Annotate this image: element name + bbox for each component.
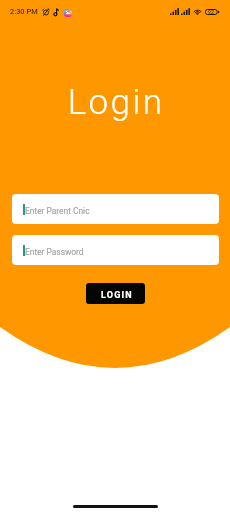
staticText: 2:30 PM [10, 7, 38, 16]
staticText: LOGIN [101, 290, 133, 301]
other: App notification [64, 9, 72, 17]
staticText: Enter Password [25, 247, 84, 257]
staticText: Login [1, 82, 230, 123]
staticText: 92 [208, 9, 214, 15]
button[interactable]: Enter Password [12, 235, 219, 265]
button[interactable]: Enter Parent Cnic [12, 194, 219, 224]
staticText: Enter Parent Cnic [25, 206, 90, 216]
button[interactable]: LOGIN [86, 283, 145, 304]
